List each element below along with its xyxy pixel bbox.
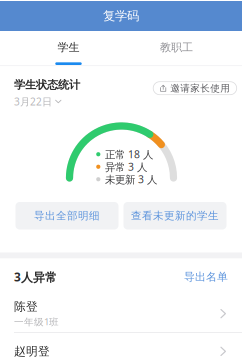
staticText: 陈登 — [14, 299, 38, 314]
staticText: 教职工 — [160, 40, 193, 54]
button[interactable]: 邀请家长使用 — [153, 82, 237, 95]
staticText: 复学码 — [103, 8, 139, 24]
staticText: 学生状态统计 — [14, 78, 80, 92]
staticText: 异常 3 人 — [105, 160, 147, 174]
staticText: 3月22日 — [14, 95, 52, 108]
staticText: 赵明登 — [14, 344, 50, 358]
staticText: 未更新 3 人 — [105, 172, 157, 186]
button[interactable]: 导出全部明细 — [15, 202, 118, 229]
button[interactable]: 赵明登 — [0, 333, 242, 362]
staticText: 导出全部明细 — [34, 209, 100, 222]
button[interactable]: 学生 — [14, 31, 122, 65]
button[interactable]: 陈登 — [0, 295, 242, 332]
staticText: 邀请家长使用 — [170, 82, 230, 94]
staticText: 3人异常 — [14, 269, 57, 285]
button[interactable]: 查看未更新的学生 — [123, 202, 226, 229]
staticText: 一年级1班 — [14, 315, 59, 328]
button[interactable]: 导出名单 — [184, 270, 228, 284]
staticText: 学生 — [57, 40, 79, 54]
staticText: 正常 18 人 — [105, 147, 153, 161]
staticText: 导出名单 — [184, 270, 228, 284]
button[interactable]: 教职工 — [122, 31, 230, 65]
staticText: 查看未更新的学生 — [131, 209, 219, 222]
